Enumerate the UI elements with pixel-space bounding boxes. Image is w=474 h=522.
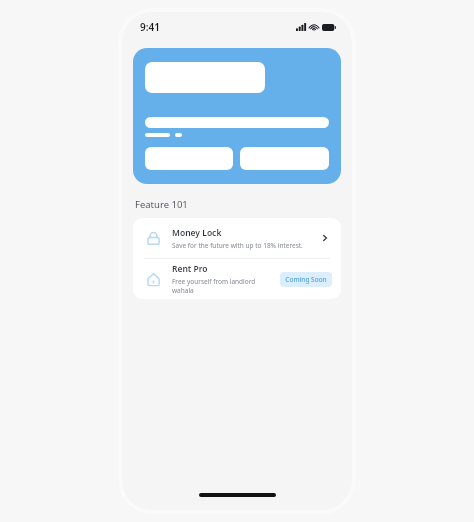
staticText: Save for the future with up to 18% inter…: [172, 241, 303, 250]
staticText: Coming Soon: [285, 275, 327, 284]
button[interactable]: [145, 147, 233, 170]
button[interactable]: Open Money Lock: [318, 231, 332, 245]
staticText: 9:41: [140, 20, 160, 34]
button[interactable]: Coming Soon: [280, 272, 332, 287]
button[interactable]: [133, 48, 341, 184]
button[interactable]: Rent Pro: [133, 259, 341, 299]
staticText: Rent Pro: [172, 263, 208, 275]
staticText: Free yourself from landlord wahala: [172, 277, 276, 295]
staticText: Money Lock: [172, 227, 222, 239]
button[interactable]: Money Lock: [133, 218, 341, 258]
staticText: Feature 101: [135, 198, 188, 211]
button[interactable]: [240, 147, 329, 170]
